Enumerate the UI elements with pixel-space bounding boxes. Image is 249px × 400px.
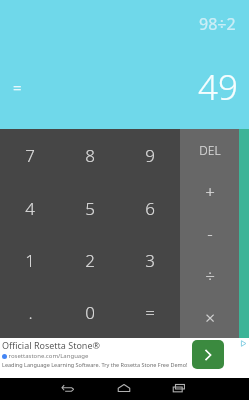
button[interactable]: Back — [61, 380, 77, 396]
staticText: 4 — [25, 197, 35, 220]
button[interactable]: Calculator display 98 divided by 2 equal… — [0, 0, 249, 129]
staticText: 49 — [198, 63, 238, 111]
button[interactable]: + — [180, 170, 239, 212]
button[interactable]: 4 — [0, 182, 60, 234]
button[interactable]: Recents — [171, 380, 187, 396]
staticText: 5 — [85, 197, 95, 220]
staticText: Leading Language Learning Software. Try … — [2, 361, 188, 368]
staticText: rosettastone.com/Language — [7, 352, 89, 360]
staticText: = — [145, 301, 155, 324]
staticText: = — [13, 77, 22, 97]
staticText: Official Rosetta Stone® — [2, 339, 100, 351]
button[interactable]: Home — [116, 380, 132, 396]
button[interactable]: × — [180, 296, 239, 338]
staticText: DEL — [199, 142, 221, 158]
button[interactable]: 8 — [60, 129, 120, 182]
button[interactable]: 2 — [60, 234, 120, 286]
staticText: - — [207, 222, 213, 245]
staticText: 8 — [85, 144, 95, 167]
staticText: . — [28, 301, 33, 324]
staticText: × — [205, 306, 215, 329]
staticText: 6 — [145, 197, 155, 220]
staticText: 0 — [85, 301, 95, 324]
button[interactable]: 0 — [60, 286, 120, 338]
button[interactable]: . — [0, 286, 60, 338]
staticText: 3 — [145, 249, 155, 272]
button[interactable]: 3 — [120, 234, 180, 286]
staticText: 98÷2 — [199, 13, 236, 35]
staticText: 9 — [145, 144, 155, 167]
staticText: 7 — [25, 144, 35, 167]
staticText: 1 — [25, 249, 35, 272]
button[interactable]: ÷ — [180, 254, 239, 296]
staticText: + — [205, 180, 215, 203]
staticText: 2 — [85, 249, 95, 272]
button[interactable]: 7 — [0, 129, 60, 182]
button[interactable]: 5 — [60, 182, 120, 234]
button[interactable]: DEL — [180, 129, 239, 170]
button[interactable]: = — [120, 286, 180, 338]
button[interactable]: - — [180, 212, 239, 254]
button[interactable]: 1 — [0, 234, 60, 286]
button[interactable]: Open ad — [192, 340, 224, 369]
button[interactable]: 9 — [120, 129, 180, 182]
staticText: ÷ — [205, 264, 215, 287]
button[interactable]: 6 — [120, 182, 180, 234]
